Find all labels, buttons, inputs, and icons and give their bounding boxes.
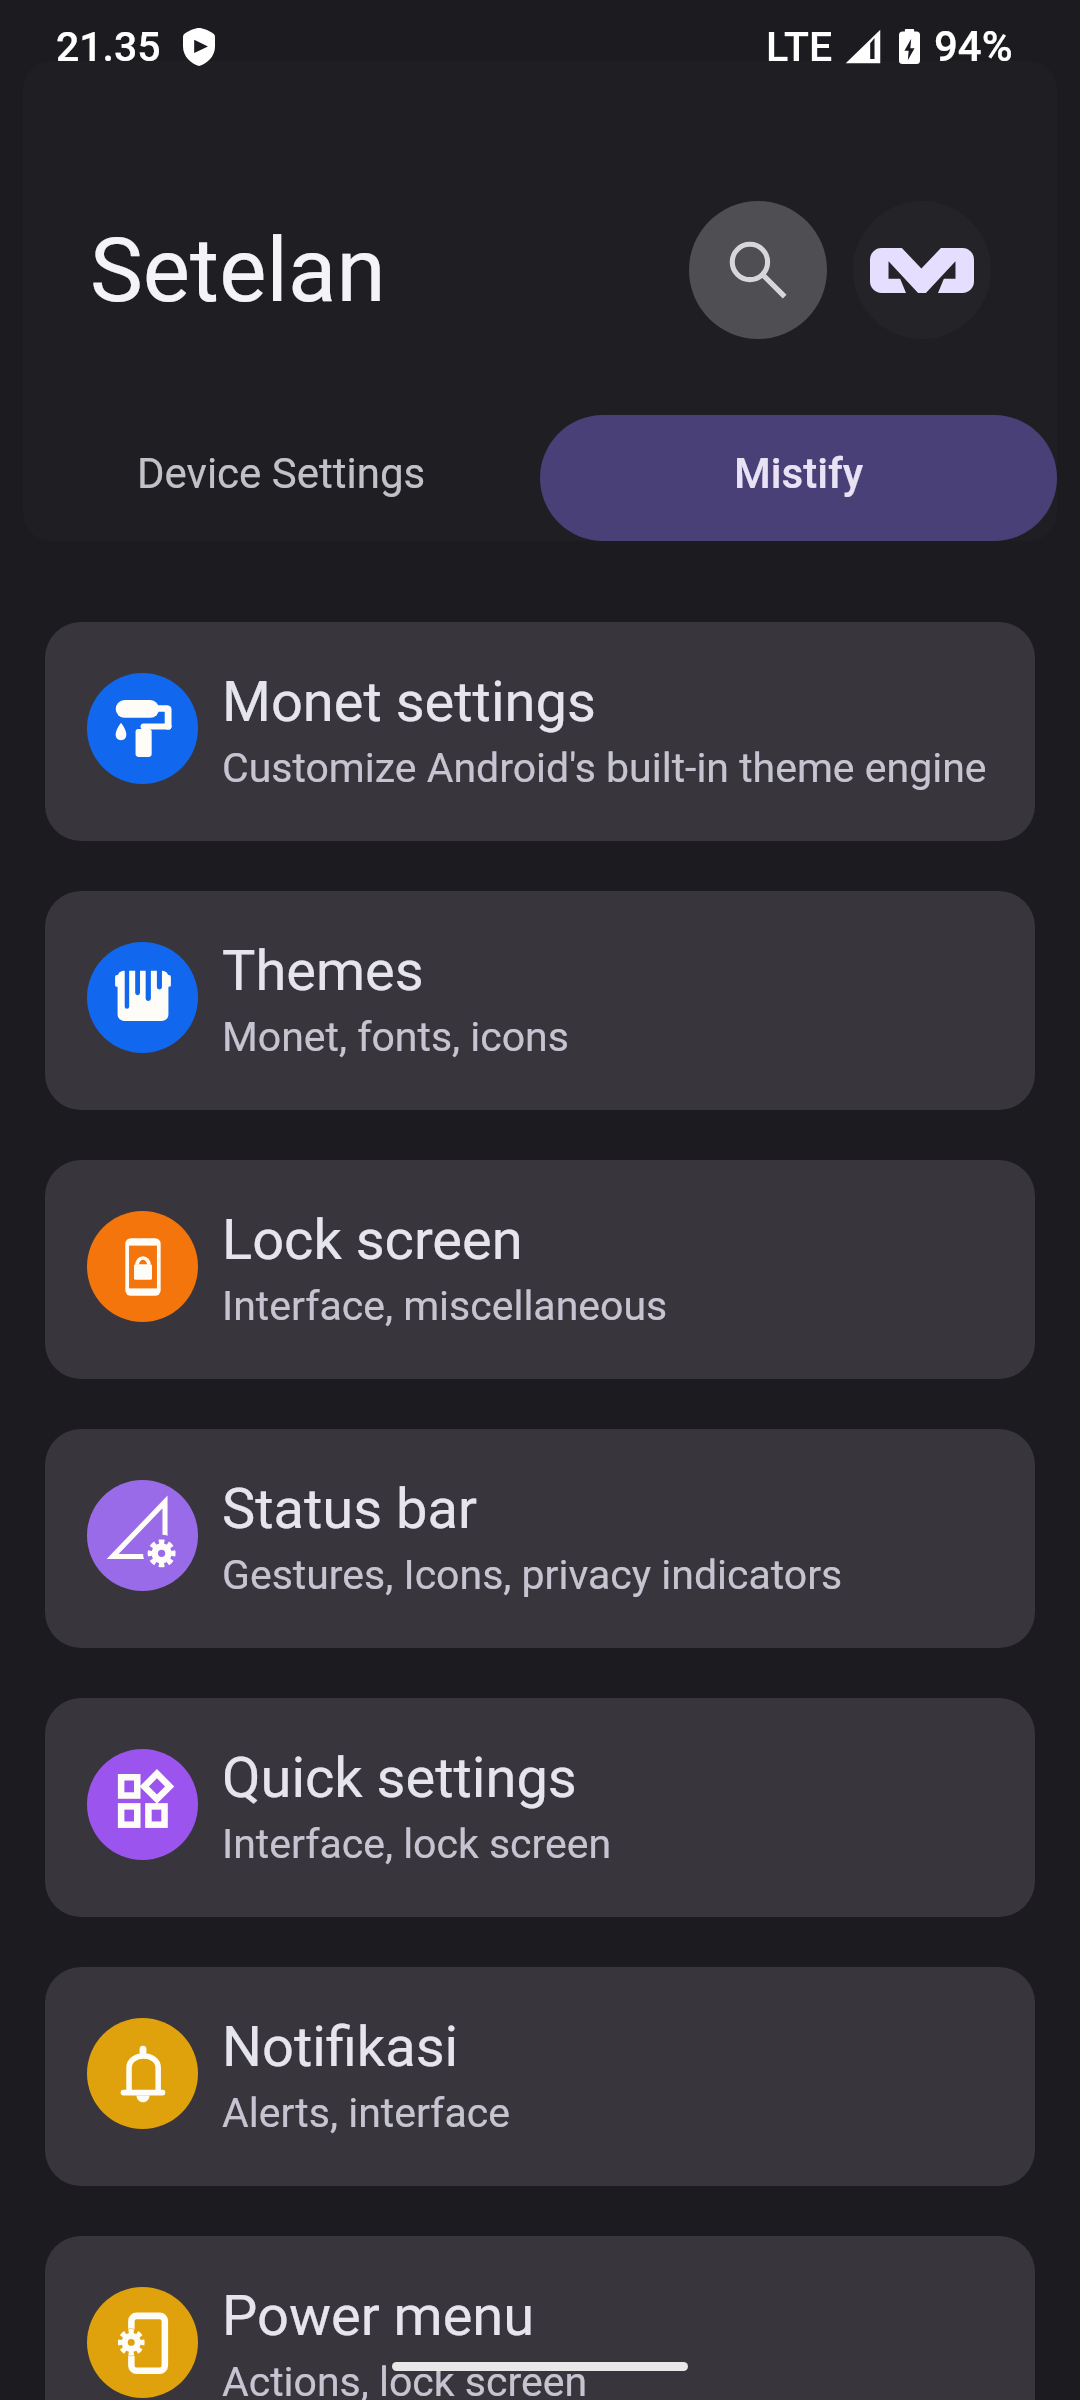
staticText: Power menu [222, 2283, 535, 2349]
button[interactable]: Monet settings [45, 622, 1035, 841]
staticText: Gestures, Icons, privacy indicators [222, 1551, 843, 1599]
button[interactable]: Status bar [45, 1429, 1035, 1648]
button[interactable]: Search [689, 201, 827, 339]
staticText: Alerts, interface [222, 2089, 510, 2137]
button[interactable]: Device Settings [23, 415, 540, 541]
staticText: Interface, miscellaneous [222, 1282, 668, 1330]
staticText: Quick settings [222, 1745, 577, 1811]
staticText: Interface, lock screen [222, 1820, 612, 1868]
staticText: Actions, lock screen [222, 2358, 588, 2400]
staticText: Lock screen [222, 1207, 523, 1273]
staticText: Notifikasi [222, 2014, 459, 2080]
button[interactable]: Lock screen [45, 1160, 1035, 1379]
button[interactable]: Mistify [540, 415, 1057, 541]
staticText: Status bar [222, 1476, 477, 1542]
staticText: Monet, fonts, icons [222, 1013, 569, 1061]
button[interactable]: Themes [45, 891, 1035, 1110]
staticText: Customize Android's built-in theme engin… [222, 744, 987, 792]
staticText: Mistify [734, 449, 864, 498]
staticText: Device Settings [137, 449, 426, 498]
staticText: Setelan [90, 218, 386, 322]
staticText: 94% [934, 22, 1013, 71]
staticText: LTE [766, 23, 833, 71]
button[interactable]: Notifikasi [45, 1967, 1035, 2186]
button[interactable]: Mistify [853, 201, 991, 339]
staticText: Themes [222, 938, 424, 1004]
button[interactable]: Quick settings [45, 1698, 1035, 1917]
staticText: 21.35 [56, 23, 161, 71]
staticText: Monet settings [222, 669, 596, 735]
button[interactable]: Power menu [45, 2236, 1035, 2400]
